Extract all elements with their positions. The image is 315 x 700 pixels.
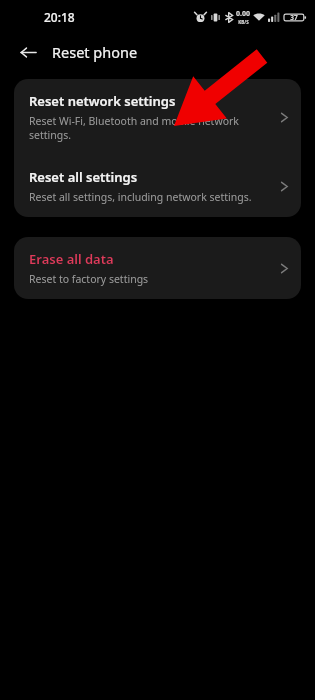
staticText: Reset network settings bbox=[29, 92, 176, 110]
staticText: Reset all settings, including network se… bbox=[29, 190, 252, 204]
staticText: Erase all data bbox=[29, 250, 114, 268]
staticText: 0.00 bbox=[236, 9, 250, 19]
staticText: Reset to factory settings bbox=[29, 272, 149, 286]
button[interactable]: Reset network settings bbox=[14, 79, 301, 155]
staticText: Reset phone bbox=[52, 42, 138, 62]
staticText: 20:18 bbox=[44, 9, 75, 25]
staticText: Reset Wi-Fi, Bluetooth and mobile networ… bbox=[29, 114, 274, 142]
button[interactable]: Reset all settings bbox=[14, 155, 301, 217]
button[interactable]: Back bbox=[12, 36, 44, 68]
staticText: KB/S bbox=[238, 19, 249, 25]
staticText: 37 bbox=[290, 13, 298, 22]
button[interactable]: Erase all data bbox=[14, 237, 301, 299]
staticText: Reset all settings bbox=[29, 168, 138, 186]
